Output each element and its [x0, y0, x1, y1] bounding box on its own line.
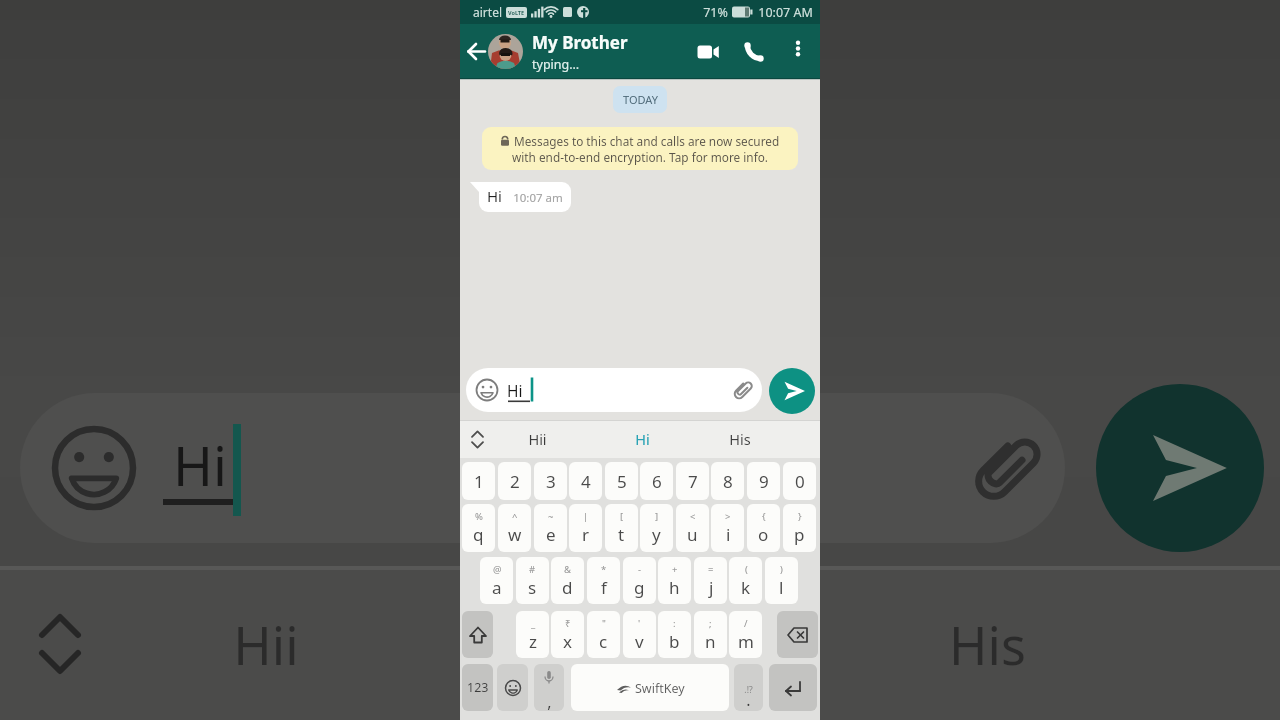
- staticText: |: [583, 510, 589, 523]
- button[interactable]: Hi: [466, 368, 762, 412]
- button[interactable]: [497, 664, 528, 711]
- button[interactable]: @: [480, 557, 513, 604]
- staticText: ^: [512, 510, 518, 523]
- staticText: _: [531, 617, 536, 630]
- button[interactable]: 6: [640, 462, 673, 500]
- staticText: Hi: [173, 428, 227, 502]
- button[interactable]: [769, 664, 817, 711]
- staticText: l: [779, 576, 784, 599]
- staticText: +: [672, 563, 678, 576]
- staticText: -: [638, 563, 642, 576]
- staticText: typing…: [532, 56, 580, 73]
- button[interactable]: Messages to this chat and calls are now …: [482, 127, 798, 170]
- staticText: Hii: [528, 429, 547, 449]
- button[interactable]: &: [551, 557, 584, 604]
- staticText: #: [529, 563, 536, 576]
- staticText: r: [582, 523, 590, 546]
- button[interactable]: (: [729, 557, 762, 604]
- button[interactable]: _: [516, 611, 549, 658]
- staticText: j: [709, 576, 714, 599]
- staticText: 71%: [703, 4, 728, 21]
- staticText: k: [741, 576, 751, 599]
- button[interactable]: [737, 33, 773, 69]
- staticText: 0: [795, 470, 805, 493]
- staticText: ₹: [565, 617, 571, 630]
- staticText: s: [528, 576, 537, 599]
- staticText: y: [652, 523, 661, 546]
- staticText: >: [725, 510, 731, 523]
- button[interactable]: 5: [605, 462, 638, 500]
- staticText: 9: [759, 470, 769, 493]
- button[interactable]: .!?: [734, 664, 763, 711]
- button[interactable]: ': [623, 611, 656, 658]
- button[interactable]: ,: [534, 664, 564, 711]
- button[interactable]: #: [516, 557, 549, 604]
- staticText: i: [726, 523, 731, 546]
- button[interactable]: [462, 611, 493, 658]
- button[interactable]: <: [676, 504, 709, 552]
- button[interactable]: ): [765, 557, 798, 604]
- button[interactable]: /: [729, 611, 762, 658]
- button[interactable]: [777, 611, 818, 658]
- button[interactable]: [784, 33, 814, 63]
- staticText: /: [744, 617, 748, 630]
- staticText: 5: [617, 470, 627, 493]
- staticText: &: [564, 563, 571, 576]
- button[interactable]: 4: [569, 462, 602, 500]
- staticText: airtel: [473, 4, 502, 20]
- button[interactable]: 1: [462, 462, 495, 500]
- button[interactable]: 7: [676, 462, 709, 500]
- staticText: <: [690, 510, 696, 523]
- button[interactable]: [769, 368, 815, 414]
- staticText: SwiftKey: [635, 680, 685, 697]
- staticText: e: [546, 523, 556, 546]
- button[interactable]: 2: [498, 462, 531, 500]
- button[interactable]: [: [605, 504, 638, 552]
- staticText: t: [618, 523, 625, 546]
- button[interactable]: [460, 24, 494, 78]
- button[interactable]: =: [694, 557, 727, 604]
- button[interactable]: 3: [534, 462, 567, 500]
- staticText: VoLTE: [508, 9, 525, 16]
- button[interactable]: -: [623, 557, 656, 604]
- staticText: Hi: [507, 380, 523, 401]
- button[interactable]: ~: [534, 504, 567, 552]
- button[interactable]: [488, 34, 523, 69]
- button[interactable]: ;: [694, 611, 727, 658]
- button[interactable]: [690, 33, 726, 69]
- staticText: His: [949, 609, 1026, 680]
- staticText: w: [508, 523, 522, 546]
- staticText: %: [475, 510, 483, 523]
- staticText: v: [635, 630, 644, 653]
- button[interactable]: +: [658, 557, 691, 604]
- button[interactable]: >: [711, 504, 744, 552]
- staticText: =: [708, 563, 714, 576]
- button[interactable]: ^: [498, 504, 531, 552]
- button[interactable]: ]: [640, 504, 673, 552]
- button[interactable]: }: [783, 504, 816, 552]
- button[interactable]: 9: [747, 462, 780, 500]
- button[interactable]: %: [462, 504, 495, 552]
- button[interactable]: {: [747, 504, 780, 552]
- staticText: (: [745, 563, 748, 576]
- staticText: 7: [688, 470, 698, 493]
- staticText: }: [798, 510, 802, 523]
- staticText: u: [687, 523, 698, 546]
- staticText: n: [705, 630, 716, 653]
- button[interactable]: 8: [711, 462, 744, 500]
- button[interactable]: ": [587, 611, 620, 658]
- button[interactable]: 0: [783, 462, 816, 500]
- staticText: ": [602, 617, 606, 630]
- staticText: o: [758, 523, 769, 546]
- button[interactable]: 123: [462, 664, 493, 711]
- button[interactable]: |: [569, 504, 602, 552]
- staticText: q: [473, 523, 484, 546]
- button[interactable]: My Brother: [532, 31, 628, 73]
- staticText: {: [762, 510, 766, 523]
- button[interactable]: :: [658, 611, 691, 658]
- staticText: 1: [474, 470, 484, 493]
- button[interactable]: SwiftKey: [571, 664, 729, 711]
- button[interactable]: *: [587, 557, 620, 604]
- button[interactable]: ₹: [551, 611, 584, 658]
- staticText: 6: [652, 470, 662, 493]
